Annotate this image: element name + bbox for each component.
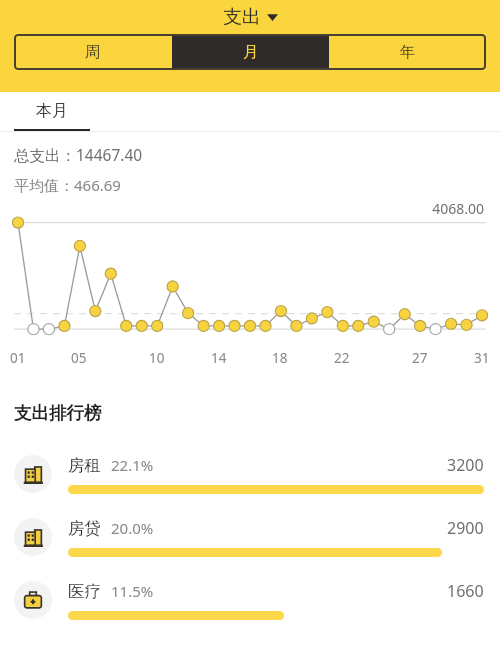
staticText: 31 (474, 349, 490, 367)
staticText: 支出排行榜 (14, 402, 102, 424)
staticText: 01 (10, 349, 26, 367)
staticText: 10 (149, 349, 165, 367)
staticText: 总支出：14467.40 (14, 144, 143, 165)
staticText: 月 (243, 42, 259, 62)
button[interactable]: 房贷 (0, 505, 500, 568)
staticText: 27 (412, 349, 428, 367)
staticText: 平均值：466.69 (14, 175, 121, 195)
staticText: 4068.00 (0, 199, 484, 218)
staticText: 20.0% (111, 518, 154, 538)
button[interactable]: 本月 (14, 92, 90, 132)
staticText: 本月 (36, 101, 68, 121)
staticText: 11.5% (111, 581, 154, 601)
button[interactable]: 月 (172, 34, 329, 70)
button[interactable]: 支出 切换类型 (0, 0, 500, 34)
button[interactable]: 周 (14, 34, 172, 70)
staticText: 房租 (68, 455, 101, 476)
staticText: 22 (334, 349, 350, 367)
staticText: 房贷 (68, 518, 101, 539)
staticText: 18 (272, 349, 288, 367)
staticText: 05 (71, 349, 87, 367)
staticText: 22.1% (111, 455, 154, 475)
button[interactable]: 医疗 (0, 568, 500, 631)
staticText: 年 (400, 42, 416, 62)
staticText: 医疗 (68, 581, 101, 602)
staticText: 14 (211, 349, 227, 367)
staticText: 支出 (223, 5, 261, 29)
button[interactable]: 年 (329, 34, 486, 70)
staticText: 1660 (447, 580, 484, 602)
staticText: 周 (85, 42, 101, 62)
staticText: 3200 (447, 454, 484, 476)
staticText: 2900 (447, 517, 484, 539)
button[interactable]: 房租 (0, 442, 500, 505)
